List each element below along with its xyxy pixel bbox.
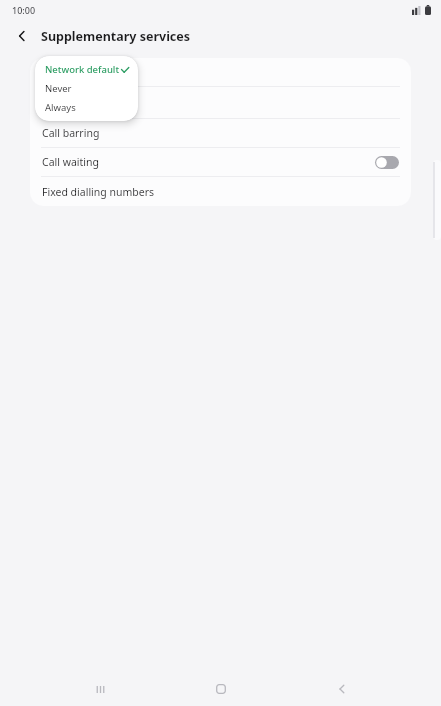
staticText: Network default — [45, 63, 120, 76]
button[interactable] — [30, 87, 411, 118]
button[interactable]: Recent apps — [78, 672, 122, 706]
staticText: Never — [45, 82, 72, 95]
button[interactable]: Call waiting toggle — [375, 156, 399, 169]
staticText: Call barring — [42, 126, 100, 140]
button[interactable]: Fixed dialling numbers — [30, 177, 411, 206]
staticText: Supplementary services — [41, 28, 191, 45]
button[interactable]: Back — [10, 24, 34, 48]
button[interactable]: Home — [199, 672, 243, 706]
staticText: Always — [45, 101, 76, 114]
button[interactable]: Never — [35, 79, 138, 98]
button[interactable] — [30, 58, 411, 86]
button[interactable]: Back — [320, 672, 364, 706]
button[interactable]: Always — [35, 98, 138, 117]
staticText: Call waiting — [42, 155, 99, 169]
button[interactable]: Network default — [35, 60, 138, 79]
staticText: Fixed dialling numbers — [42, 185, 155, 199]
button[interactable]: Call barring — [30, 119, 411, 147]
staticText: 10:00 — [12, 4, 36, 16]
button[interactable]: Call waiting — [30, 148, 411, 176]
